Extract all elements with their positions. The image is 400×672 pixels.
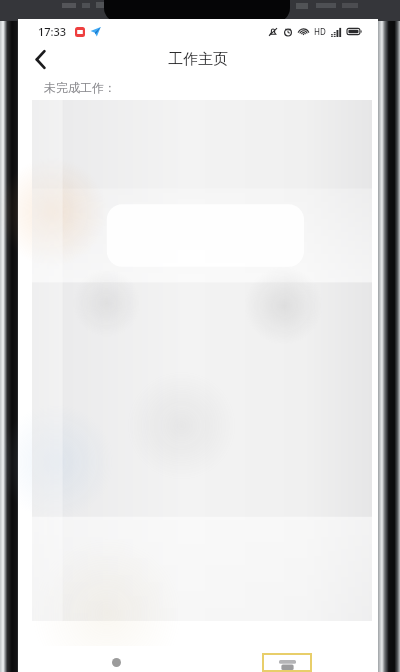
staticText: 未完成工作： [44,80,116,95]
button[interactable] [32,100,372,621]
button[interactable]: Home [96,646,136,672]
button[interactable]: Tasks [262,653,312,672]
staticText: HD [314,26,326,37]
button[interactable]: Back [18,43,62,76]
staticText: 17:33 [38,24,67,39]
staticText: 工作主页 [168,50,228,69]
